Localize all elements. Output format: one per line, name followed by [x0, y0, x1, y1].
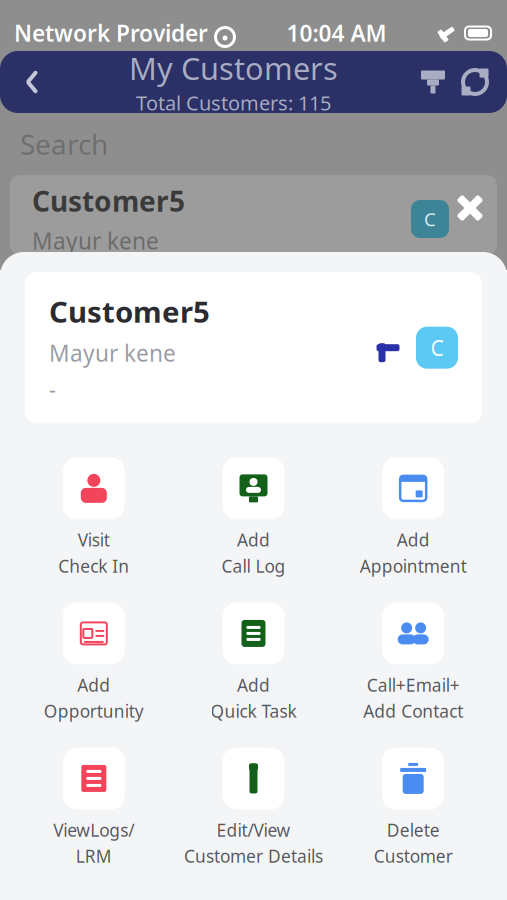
button[interactable]: Filter [413, 60, 453, 104]
button[interactable]: ViewLogs/ [14, 743, 174, 871]
staticText: LRM [76, 844, 112, 867]
button[interactable]: Visit [14, 453, 174, 581]
staticText: Delete [387, 818, 440, 841]
staticText: Call Log [221, 554, 285, 577]
button[interactable]: Add [174, 453, 333, 581]
staticText: Customer [374, 844, 453, 867]
button[interactable]: Navigate [366, 326, 410, 370]
button[interactable]: Add [174, 598, 333, 726]
button[interactable]: Delete [333, 743, 493, 871]
button[interactable]: Add [14, 598, 174, 726]
button[interactable]: Refresh [453, 60, 497, 104]
staticText: Appointment [360, 554, 467, 577]
staticText: My Customers [129, 48, 338, 89]
staticText: Opportunity [44, 699, 144, 722]
button[interactable]: Add [333, 453, 493, 581]
staticText: Total Customers: 115 [136, 90, 331, 116]
button[interactable]: Edit/View [174, 743, 333, 871]
button[interactable]: Back [10, 60, 54, 104]
staticText: Add [77, 673, 110, 696]
staticText: Customer5 [32, 182, 185, 220]
staticText: Network Provider [14, 18, 208, 48]
staticText: C [424, 207, 436, 231]
staticText: Add Contact [363, 699, 463, 722]
staticText: Call+Email+ [367, 673, 460, 696]
staticText: ViewLogs/ [53, 818, 134, 841]
button[interactable]: Call+Email+ [333, 598, 493, 726]
staticText: - [49, 375, 56, 403]
staticText: Add [237, 673, 270, 696]
staticText: Add [237, 528, 270, 551]
staticText: C [430, 333, 443, 362]
staticText: Mayur kene [32, 225, 159, 256]
staticText: Search [20, 125, 108, 163]
staticText: Customer Details [184, 844, 323, 867]
staticText: 10:04 AM [286, 18, 386, 48]
staticText: Visit [78, 528, 110, 551]
staticText: Mayur kene [49, 338, 176, 368]
staticText: Add [397, 528, 430, 551]
staticText: Quick Task [210, 699, 296, 722]
staticText: Edit/View [216, 818, 290, 841]
staticText: Customer5 [49, 292, 210, 331]
staticText: Check In [58, 554, 129, 577]
button[interactable]: Close [448, 186, 492, 230]
